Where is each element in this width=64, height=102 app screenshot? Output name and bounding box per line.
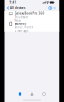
staticText: Now <box>15 19 21 22</box>
button[interactable]: SM-N960 <box>4 21 59 32</box>
staticText: 9:41 <box>9 1 16 4</box>
button[interactable]: Add device <box>49 5 52 11</box>
staticText: 2 min ago <box>15 29 29 33</box>
staticText: Galaxy Book Pro 360 <box>15 12 45 15</box>
button[interactable]: All devices <box>7 5 25 11</box>
button[interactable]: Me <box>38 91 50 97</box>
button[interactable]: People <box>26 91 38 97</box>
staticText: This device <box>15 15 29 19</box>
button[interactable]: Devices <box>14 91 26 97</box>
button[interactable]: Galaxy Book Pro 360 <box>4 11 59 21</box>
staticText: SM-N960 <box>15 22 27 25</box>
staticText: All devices <box>10 6 25 10</box>
button[interactable]: More options <box>52 7 57 9</box>
staticText: Seoul, Korea <box>15 25 33 29</box>
